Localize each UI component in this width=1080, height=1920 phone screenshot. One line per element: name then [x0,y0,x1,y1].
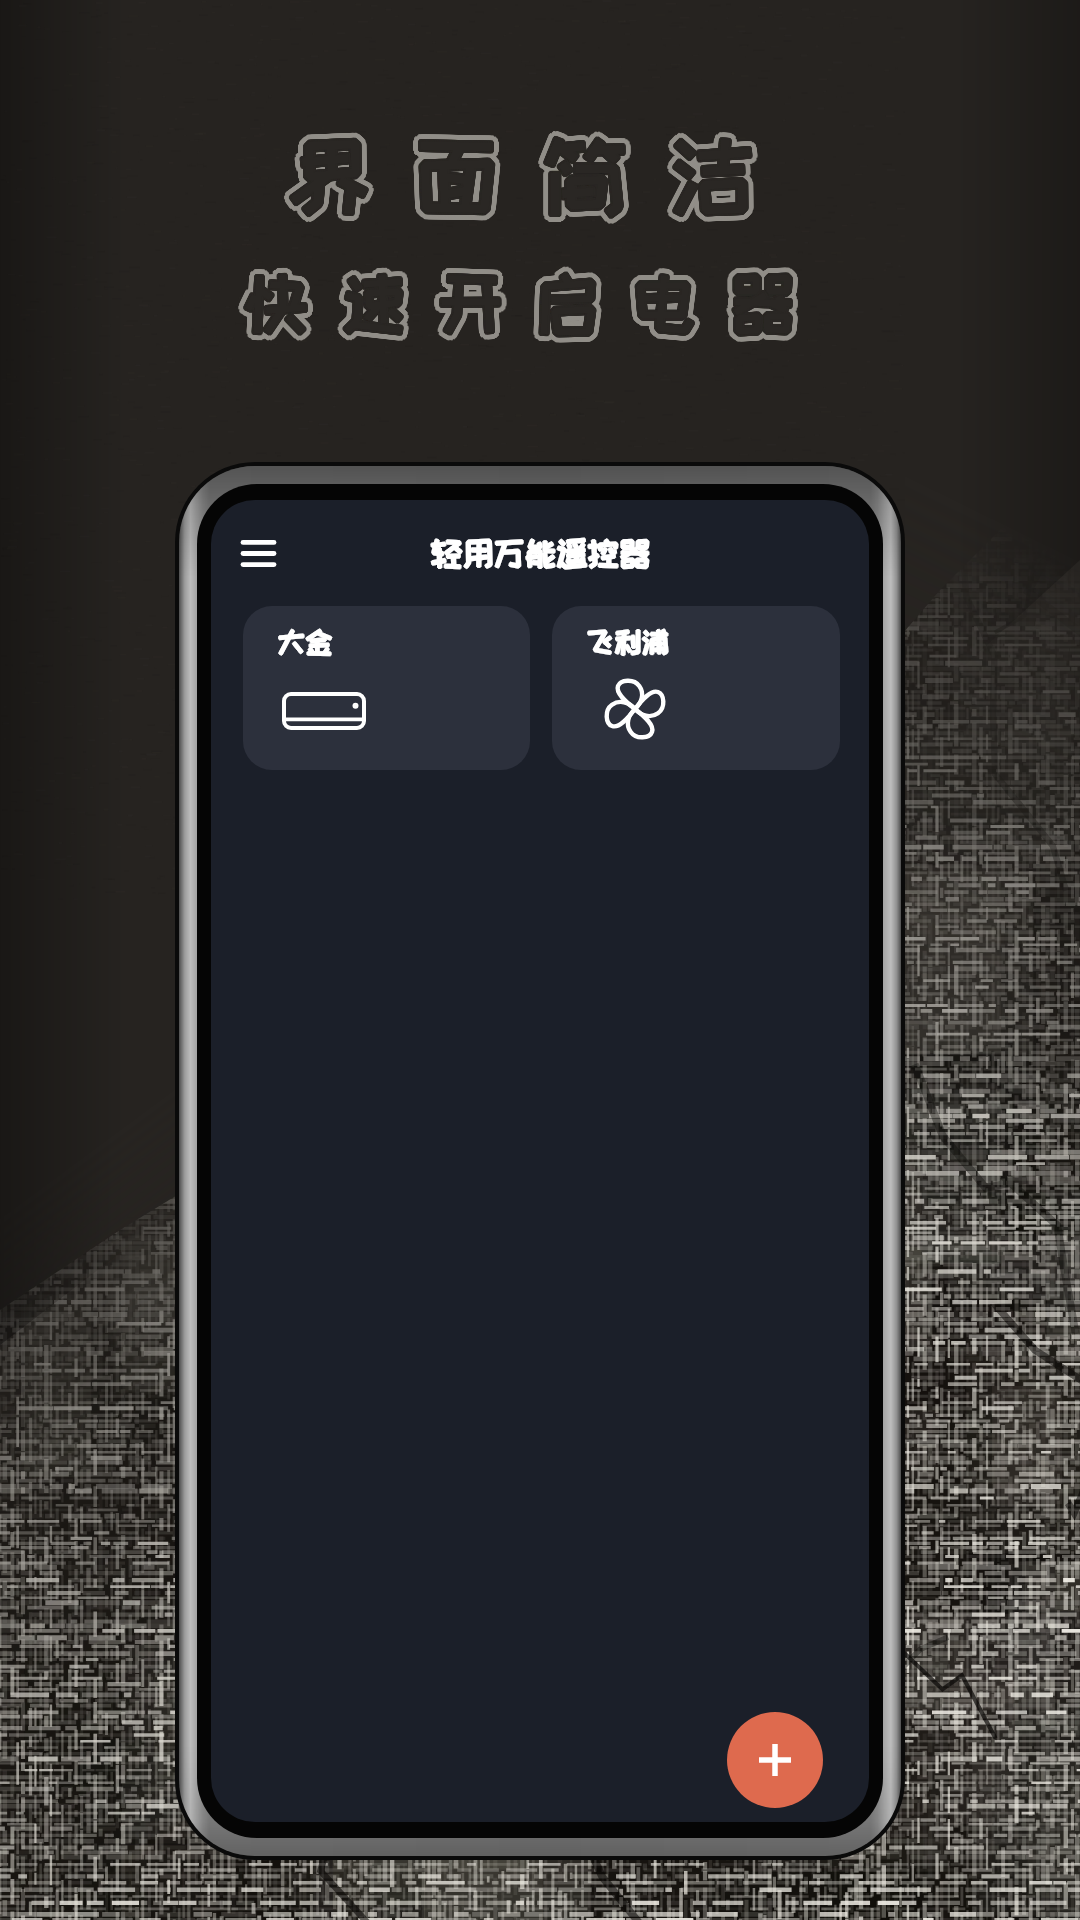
staticText: 快速开启电器 [244,266,828,337]
staticText: 飞利浦 [587,627,670,657]
staticText: 界面简洁 [286,137,797,228]
staticText: 界面简洁 [288,128,799,219]
staticText: 界面简洁 [293,134,804,225]
staticText: 快速开启电器 [240,262,824,333]
staticText: 快速开启电器 [242,275,826,346]
staticText: 界面简洁 [281,133,792,224]
staticText: 轻用万能遥控器 [431,535,650,569]
staticText: 快速开启电器 [242,270,826,341]
staticText: 界面简洁 [281,127,792,218]
staticText: 界面简洁 [280,129,791,220]
staticText: 界面简洁 [284,124,795,215]
staticText: 界面简洁 [286,123,797,214]
staticText: 界面简洁 [289,130,800,221]
staticText: 界面简洁 [288,137,799,228]
staticText: 轻用万能遥控器 [430,536,649,570]
staticText: 界面简洁 [285,131,796,222]
staticText: 界面简洁 [293,133,804,224]
staticText: 界面简洁 [289,129,800,220]
staticText: 界面简洁 [286,128,797,219]
staticText: 快速开启电器 [245,269,829,340]
staticText: 快速开启电器 [245,267,829,338]
staticText: 界面简洁 [289,129,800,220]
staticText: 界面简洁 [285,130,796,221]
staticText: 快速开启电器 [248,273,832,344]
staticText: 界面简洁 [289,130,800,221]
staticText: 快速开启电器 [244,270,828,341]
staticText: 界面简洁 [287,128,798,219]
staticText: 快速开启电器 [250,269,834,340]
staticText: 飞利浦 [586,628,669,658]
staticText: 界面简洁 [280,131,791,222]
staticText: 快速开启电器 [245,269,829,340]
staticText: 界面简洁 [289,131,800,222]
staticText: 快速开启电器 [237,272,821,343]
button[interactable]: 飞利浦 [552,606,840,770]
staticText: 界面简洁 [285,129,796,220]
staticText: 飞利浦 [586,627,669,657]
staticText: 界面简洁 [294,130,805,221]
staticText: 界面简洁 [288,128,799,219]
staticText: 界面简洁 [289,123,800,214]
staticText: 快速开启电器 [241,269,825,340]
button[interactable]: 大金 [243,606,530,770]
staticText: 快速开启电器 [249,272,833,343]
staticText: 飞利浦 [586,626,669,656]
staticText: 快速开启电器 [237,264,821,335]
staticText: 快速开启电器 [243,268,827,339]
button[interactable]: Menu [228,523,288,583]
staticText: 快速开启电器 [244,270,828,341]
staticText: 界面简洁 [286,132,797,223]
staticText: 界面简洁 [286,128,797,219]
staticText: 界面简洁 [289,131,800,222]
staticText: 界面简洁 [289,130,800,221]
staticText: 界面简洁 [282,125,793,216]
staticText: 快速开启电器 [242,266,826,337]
staticText: 快速开启电器 [243,270,827,341]
staticText: 快速开启电器 [242,270,826,341]
staticText: 大金 [277,627,333,657]
staticText: 快速开启电器 [245,268,829,339]
staticText: 快速开启电器 [249,265,833,336]
staticText: 快速开启电器 [247,262,831,333]
staticText: 快速开启电器 [238,263,822,334]
staticText: 界面简洁 [281,134,792,225]
staticText: 快速开启电器 [242,270,826,341]
staticText: 界面简洁 [281,126,792,217]
staticText: 快速开启电器 [243,270,827,341]
staticText: 快速开启电器 [250,267,834,338]
staticText: 界面简洁 [291,124,802,215]
staticText: 快速开启电器 [236,269,820,340]
staticText: 界面简洁 [287,130,798,221]
staticText: 界面简洁 [293,126,804,217]
staticText: 大金 [278,627,334,657]
staticText: 界面简洁 [286,132,797,223]
staticText: 轻用万能遥控器 [431,536,650,570]
staticText: 快速开启电器 [244,275,828,346]
staticText: 轻用万能遥控器 [431,537,650,571]
staticText: 快速开启电器 [242,266,826,337]
staticText: 快速开启电器 [244,270,828,341]
staticText: 界面简洁 [294,129,805,220]
staticText: 快速开启电器 [241,267,825,338]
staticText: 快速开启电器 [245,268,829,339]
staticText: 快速开启电器 [244,261,828,332]
staticText: 界面简洁 [289,137,800,228]
staticText: 快速开启电器 [237,271,821,342]
staticText: 快速开启电器 [243,266,827,337]
staticText: 快速开启电器 [243,266,827,337]
button[interactable]: Add device [727,1712,823,1808]
staticText: 界面简洁 [285,137,796,228]
staticText: 大金 [277,626,333,656]
staticText: 快速开启电器 [241,268,825,339]
staticText: 界面简洁 [293,127,804,218]
staticText: 快速开启电器 [245,261,829,332]
staticText: 界面简洁 [291,136,802,227]
staticText: 快速开启电器 [247,274,831,345]
staticText: 快速开启电器 [250,268,834,339]
staticText: 快速开启电器 [236,268,820,339]
staticText: 快速开启电器 [237,265,821,336]
staticText: 界面简洁 [288,132,799,223]
staticText: 快速开启电器 [249,271,833,342]
staticText: 界面简洁 [285,130,796,221]
